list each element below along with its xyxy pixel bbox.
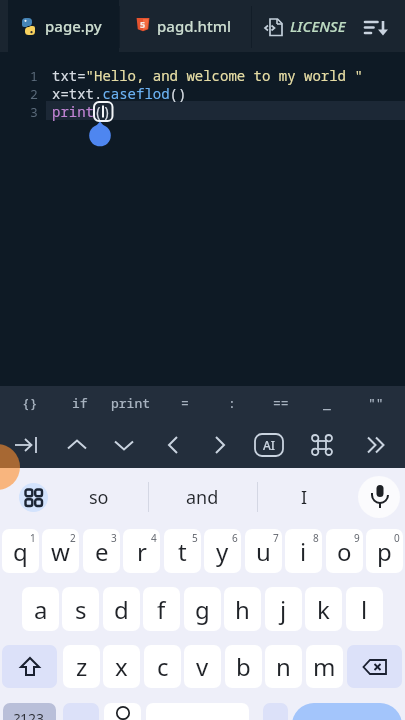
staticText: I <box>301 485 308 510</box>
staticText: print <box>111 394 151 412</box>
staticText: z <box>76 650 88 683</box>
button[interactable]: d <box>103 587 140 631</box>
button[interactable]: c <box>144 645 181 688</box>
staticText: 7 <box>273 531 279 543</box>
button[interactable] <box>292 703 402 720</box>
button[interactable] <box>104 703 141 720</box>
button[interactable]: g <box>184 587 221 631</box>
button[interactable] <box>252 0 360 52</box>
button[interactable] <box>164 435 182 455</box>
button[interactable]: b <box>225 645 262 688</box>
button[interactable]: : <box>207 386 257 420</box>
button[interactable] <box>113 435 135 455</box>
button[interactable] <box>66 435 88 455</box>
button[interactable]: q <box>2 529 39 573</box>
button[interactable]: v <box>184 645 221 688</box>
button[interactable]: z <box>63 645 100 688</box>
staticText: l <box>361 593 368 626</box>
button[interactable]: n <box>265 645 302 688</box>
staticText: pagd.html <box>157 16 231 36</box>
button[interactable]: l <box>346 587 383 631</box>
staticText: {} <box>22 394 38 412</box>
button[interactable]: = <box>160 386 210 420</box>
button[interactable]: "" <box>351 386 401 420</box>
button[interactable]: i <box>285 529 322 573</box>
staticText: b <box>236 650 251 683</box>
staticText: v <box>196 650 209 683</box>
staticText: : <box>228 394 236 412</box>
staticText: x=txt.caseflod() <box>52 84 187 103</box>
button[interactable]: r <box>123 529 160 573</box>
button[interactable]: if <box>55 386 105 420</box>
staticText: page.py <box>45 16 102 36</box>
button[interactable]: y <box>204 529 241 573</box>
button[interactable]: a <box>22 587 59 631</box>
button[interactable]: k <box>305 587 342 631</box>
staticText: ?123 <box>14 709 45 720</box>
staticText: 0 <box>394 531 400 543</box>
button[interactable]: == <box>256 386 306 420</box>
button[interactable] <box>14 435 42 455</box>
button[interactable]: u <box>245 529 282 573</box>
button[interactable]: h <box>224 587 261 631</box>
button[interactable] <box>311 434 333 456</box>
staticText: 3 <box>111 531 117 543</box>
staticText: m <box>313 650 336 683</box>
button[interactable]: w <box>42 529 79 573</box>
button[interactable]: j <box>265 587 302 631</box>
button[interactable]: o <box>326 529 363 573</box>
staticText: y <box>216 535 229 568</box>
staticText: n <box>276 650 291 683</box>
button[interactable]: {} <box>5 386 55 420</box>
button[interactable]: t <box>164 529 201 573</box>
button[interactable]: s <box>62 587 99 631</box>
staticText: r <box>137 535 147 568</box>
staticText: 3 <box>30 103 38 121</box>
staticText: 5 <box>140 18 146 30</box>
staticText: s <box>75 593 87 626</box>
staticText: 5 <box>192 531 198 543</box>
button[interactable]: _ <box>302 386 352 420</box>
button[interactable]: print <box>106 386 156 420</box>
button[interactable]: and <box>152 470 252 524</box>
button[interactable]: f <box>143 587 180 631</box>
button[interactable]: AI <box>254 433 284 457</box>
staticText: a <box>34 593 48 626</box>
button[interactable]: x <box>103 645 140 688</box>
staticText: q <box>13 535 28 568</box>
staticText: = <box>181 394 189 412</box>
button[interactable] <box>358 476 400 518</box>
staticText: and <box>186 485 219 510</box>
button[interactable]: I <box>262 470 347 524</box>
button[interactable] <box>3 703 56 720</box>
button[interactable]: p <box>366 529 403 573</box>
staticText: 1 <box>30 67 38 85</box>
button[interactable] <box>2 645 57 688</box>
staticText: AI <box>263 437 276 453</box>
staticText: 4 <box>151 531 157 543</box>
button[interactable]: m <box>306 645 343 688</box>
staticText: if <box>72 394 88 412</box>
button[interactable] <box>263 703 288 720</box>
button[interactable]: so <box>56 470 141 524</box>
staticText: f <box>157 593 166 626</box>
button[interactable] <box>366 435 386 455</box>
button[interactable] <box>363 20 391 37</box>
staticText: _ <box>323 394 331 412</box>
button[interactable] <box>211 435 229 455</box>
button[interactable] <box>0 444 20 490</box>
staticText: LICENSE <box>290 16 346 36</box>
button[interactable]: e <box>83 529 120 573</box>
staticText: p <box>377 535 392 568</box>
button[interactable] <box>120 0 251 52</box>
staticText: t <box>178 535 187 568</box>
staticText: c <box>157 650 169 683</box>
button[interactable] <box>8 0 119 52</box>
button[interactable] <box>347 645 402 688</box>
staticText: i <box>300 535 307 568</box>
button[interactable] <box>19 483 48 512</box>
staticText: e <box>95 535 109 568</box>
button[interactable] <box>63 703 99 720</box>
staticText: 2 <box>70 531 76 543</box>
